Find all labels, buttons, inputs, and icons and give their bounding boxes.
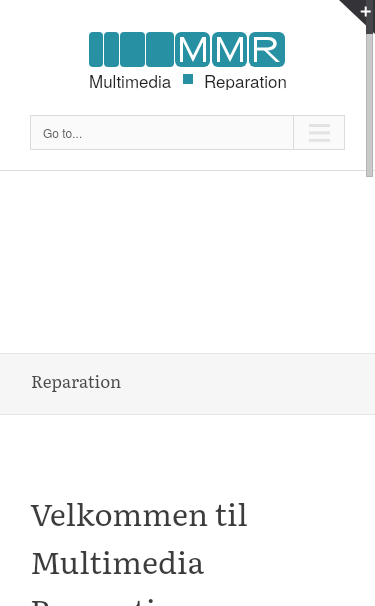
button[interactable]: Menu xyxy=(294,115,345,150)
staticText: Velkommen til Multimedia Reparation xyxy=(30,490,292,606)
button[interactable]: Add xyxy=(339,0,375,34)
staticText: Reparation xyxy=(204,68,287,90)
button[interactable]: Reparation xyxy=(31,368,122,393)
button[interactable]: Go to... xyxy=(30,115,293,150)
staticText: Multimedia xyxy=(89,68,172,90)
staticText: Go to... xyxy=(43,124,83,141)
button[interactable]: MMR Multimedia Reparation logo xyxy=(89,32,285,67)
